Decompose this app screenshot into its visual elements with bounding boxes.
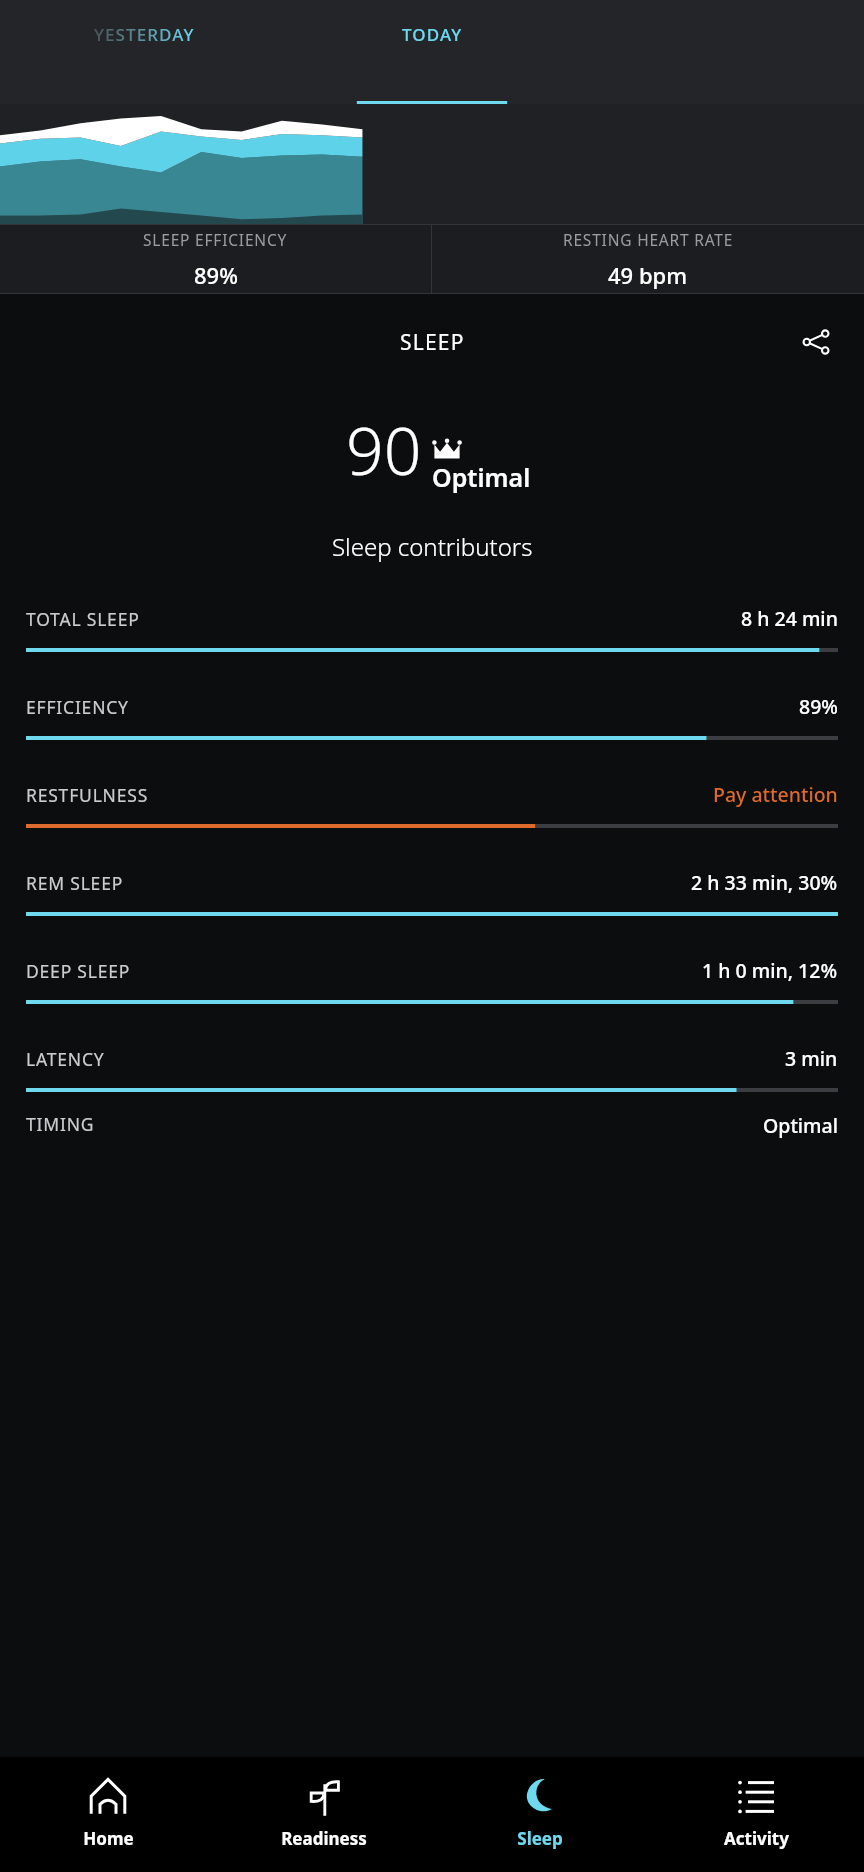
staticText: 90 <box>346 404 422 494</box>
staticText: Sleep contributors <box>332 530 533 563</box>
staticText: SLEEP <box>400 328 465 357</box>
staticText: 8 h 24 min <box>741 605 838 632</box>
staticText: REM SLEEP <box>26 871 124 895</box>
button[interactable]: Share <box>790 316 842 368</box>
staticText: TODAY <box>402 23 463 46</box>
staticText: Optimal <box>432 460 531 494</box>
staticText: Activity <box>724 1827 789 1850</box>
button[interactable]: DEEP SLEEP <box>0 936 864 1024</box>
staticText: LATENCY <box>26 1047 105 1071</box>
button[interactable]: Home <box>0 1757 216 1872</box>
staticText: YESTERDAY <box>94 23 195 46</box>
staticText: Optimal <box>763 1112 838 1139</box>
button[interactable]: REM SLEEP <box>0 848 864 936</box>
staticText: Home <box>83 1827 134 1850</box>
staticText: Readiness <box>281 1827 367 1850</box>
button[interactable]: SLEEP EFFICIENCY <box>0 225 431 293</box>
staticText: 89% <box>194 260 238 290</box>
staticText: TOTAL SLEEP <box>26 607 140 631</box>
staticText: 1 h 0 min, 12% <box>702 957 838 984</box>
button[interactable]: EFFICIENCY <box>0 672 864 760</box>
button[interactable]: Sleep <box>432 1757 648 1872</box>
staticText: SLEEP EFFICIENCY <box>143 229 288 250</box>
button[interactable]: TODAY <box>288 0 576 104</box>
button[interactable]: LATENCY <box>0 1024 864 1112</box>
staticText: DEEP SLEEP <box>26 959 131 983</box>
button[interactable]: RESTFULNESS <box>0 760 864 848</box>
button[interactable]: Activity <box>648 1757 864 1872</box>
button[interactable]: RESTING HEART RATE <box>432 225 864 293</box>
staticText: Sleep <box>517 1827 563 1850</box>
staticText: RESTFULNESS <box>26 783 149 807</box>
staticText: TIMING <box>26 1112 95 1136</box>
staticText: 2 h 33 min, 30% <box>691 869 838 896</box>
button[interactable]: Readiness <box>216 1757 432 1872</box>
button[interactable]: YESTERDAY <box>0 0 288 104</box>
staticText: 89% <box>799 693 838 720</box>
staticText: EFFICIENCY <box>26 695 129 719</box>
staticText: 49 bpm <box>608 260 688 290</box>
button[interactable]: TOTAL SLEEP <box>0 584 864 672</box>
staticText: Pay attention <box>713 781 838 808</box>
staticText: 3 min <box>785 1045 838 1072</box>
staticText: RESTING HEART RATE <box>563 229 734 250</box>
